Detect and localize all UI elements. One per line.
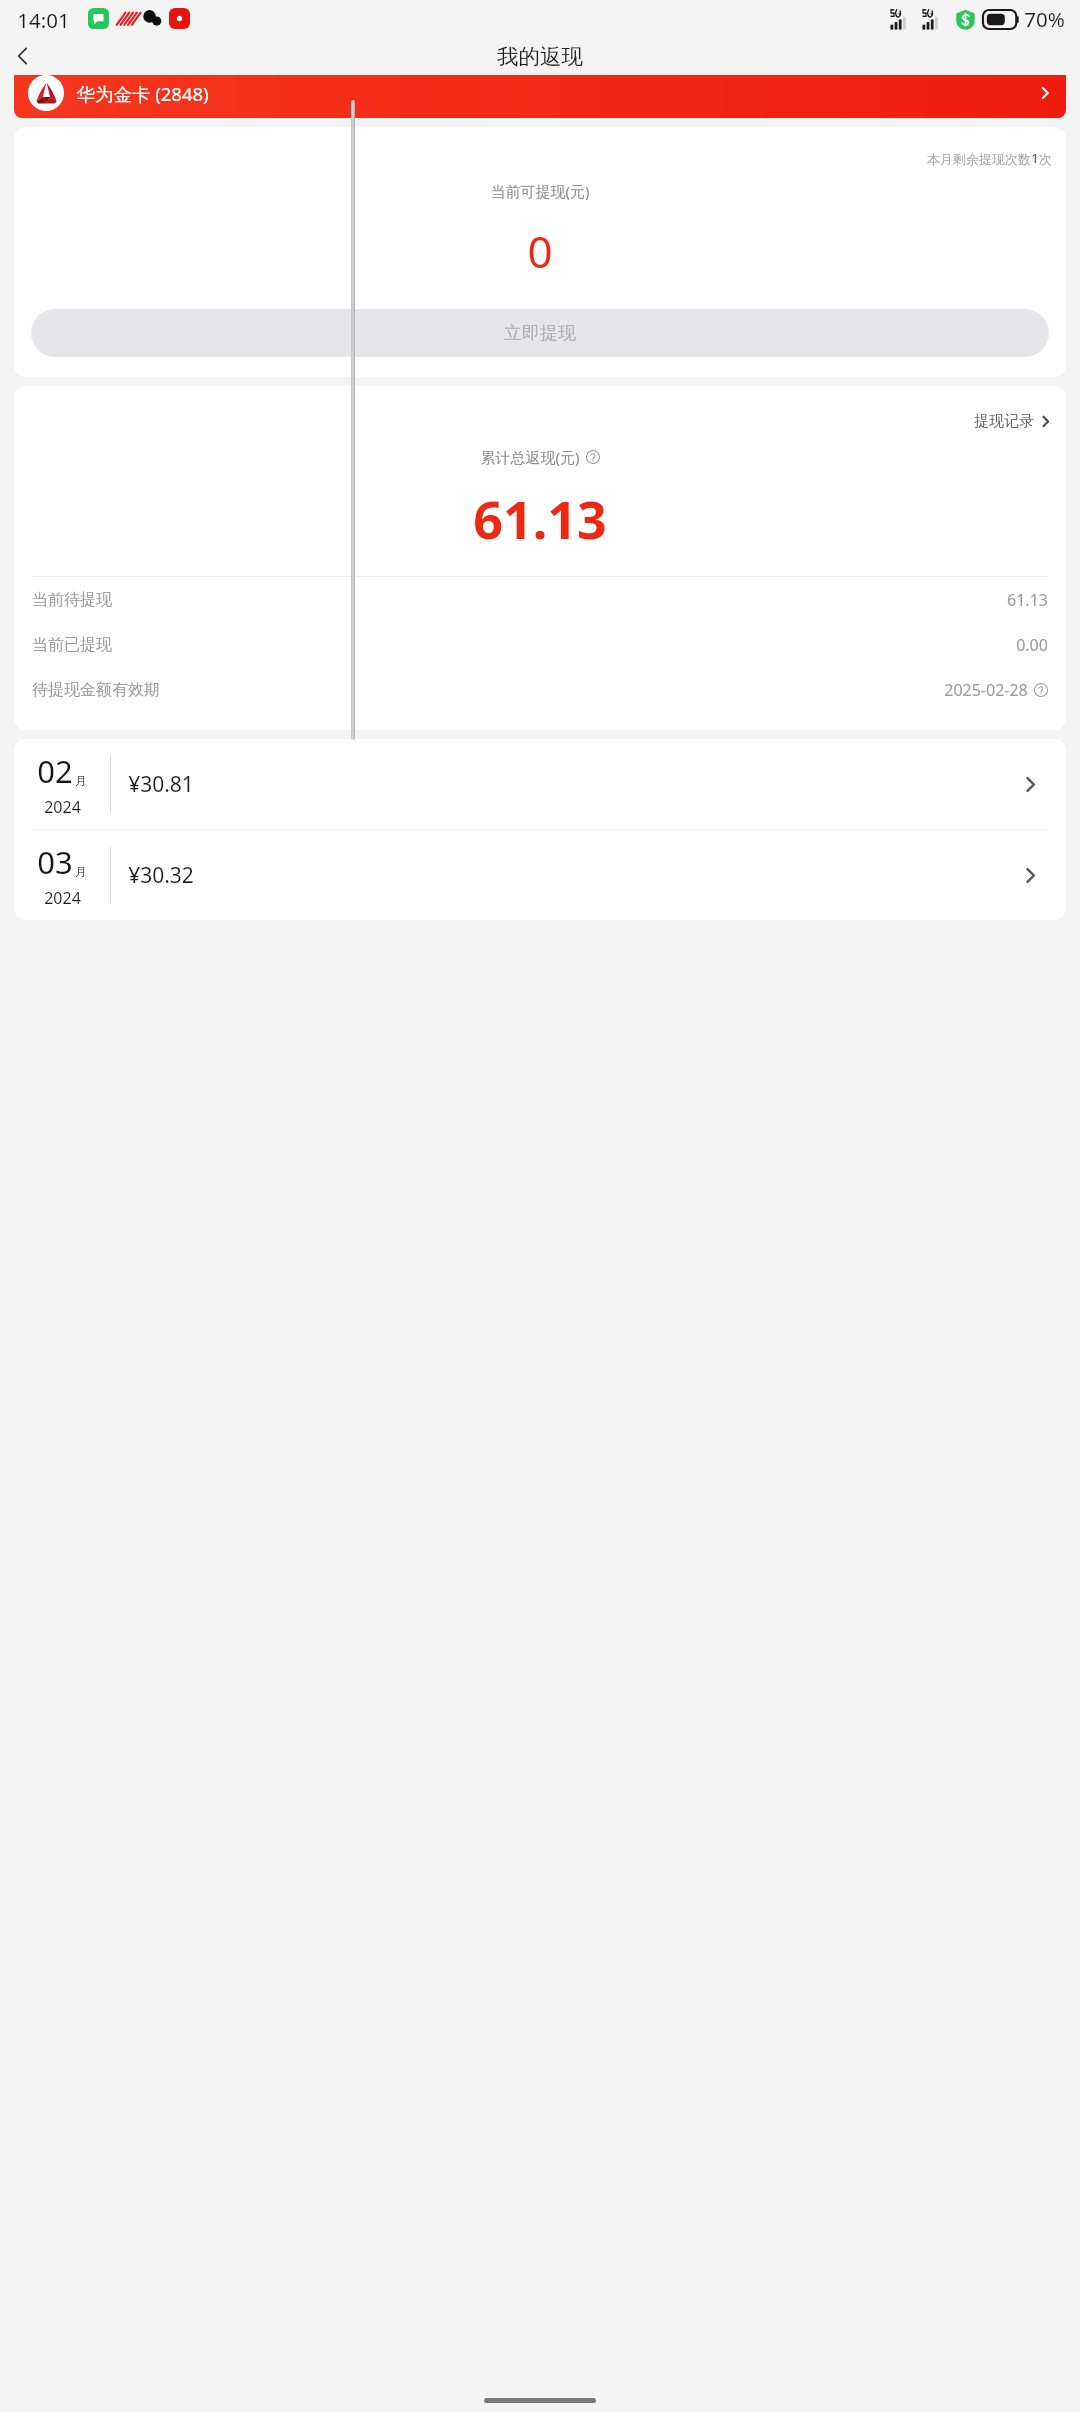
staticText: 华为金卡 (2848) xyxy=(76,81,209,106)
staticText: 1 xyxy=(1031,149,1039,167)
staticText: 2024 xyxy=(44,796,81,818)
staticText: 月 xyxy=(75,864,87,879)
button[interactable]: 02 xyxy=(14,739,1066,829)
staticText: 70% xyxy=(1024,5,1065,33)
staticText: 61.13 xyxy=(1007,589,1048,611)
staticText: ¥30.81 xyxy=(128,770,194,799)
staticText: 0.00 xyxy=(1016,634,1048,656)
staticText: 2025-02-28 xyxy=(944,679,1028,701)
staticText: 当前可提现(元) xyxy=(490,181,590,201)
staticText: 当前已提现 xyxy=(32,635,112,655)
staticText: 61.13 xyxy=(473,483,607,554)
staticText: 月 xyxy=(75,773,87,788)
staticText: 0 xyxy=(527,221,553,281)
staticText: 立即提现 xyxy=(504,322,576,345)
staticText: 14:01 xyxy=(17,6,70,34)
staticText: 本月剩余提现次数 xyxy=(927,151,1031,167)
staticText: 当前待提现 xyxy=(32,590,112,610)
staticText: 03 xyxy=(37,841,73,883)
staticText: 我的返现 xyxy=(497,43,583,70)
button[interactable]: 提现记录 xyxy=(974,412,1052,431)
staticText: 待提现金额有效期 xyxy=(32,680,160,700)
button[interactable]: Back xyxy=(0,37,46,75)
staticText: 02 xyxy=(37,750,73,792)
staticText: 提现记录 xyxy=(974,412,1034,431)
button[interactable]: 03 xyxy=(14,830,1066,920)
staticText: 次 xyxy=(1039,151,1052,167)
staticText: 2024 xyxy=(44,887,81,909)
staticText: ¥30.32 xyxy=(128,861,194,890)
button[interactable]: 立即提现 xyxy=(31,309,1049,357)
button[interactable]: 华为金卡 (2848) xyxy=(14,75,1066,118)
staticText: 累计总返现(元) xyxy=(480,447,580,467)
